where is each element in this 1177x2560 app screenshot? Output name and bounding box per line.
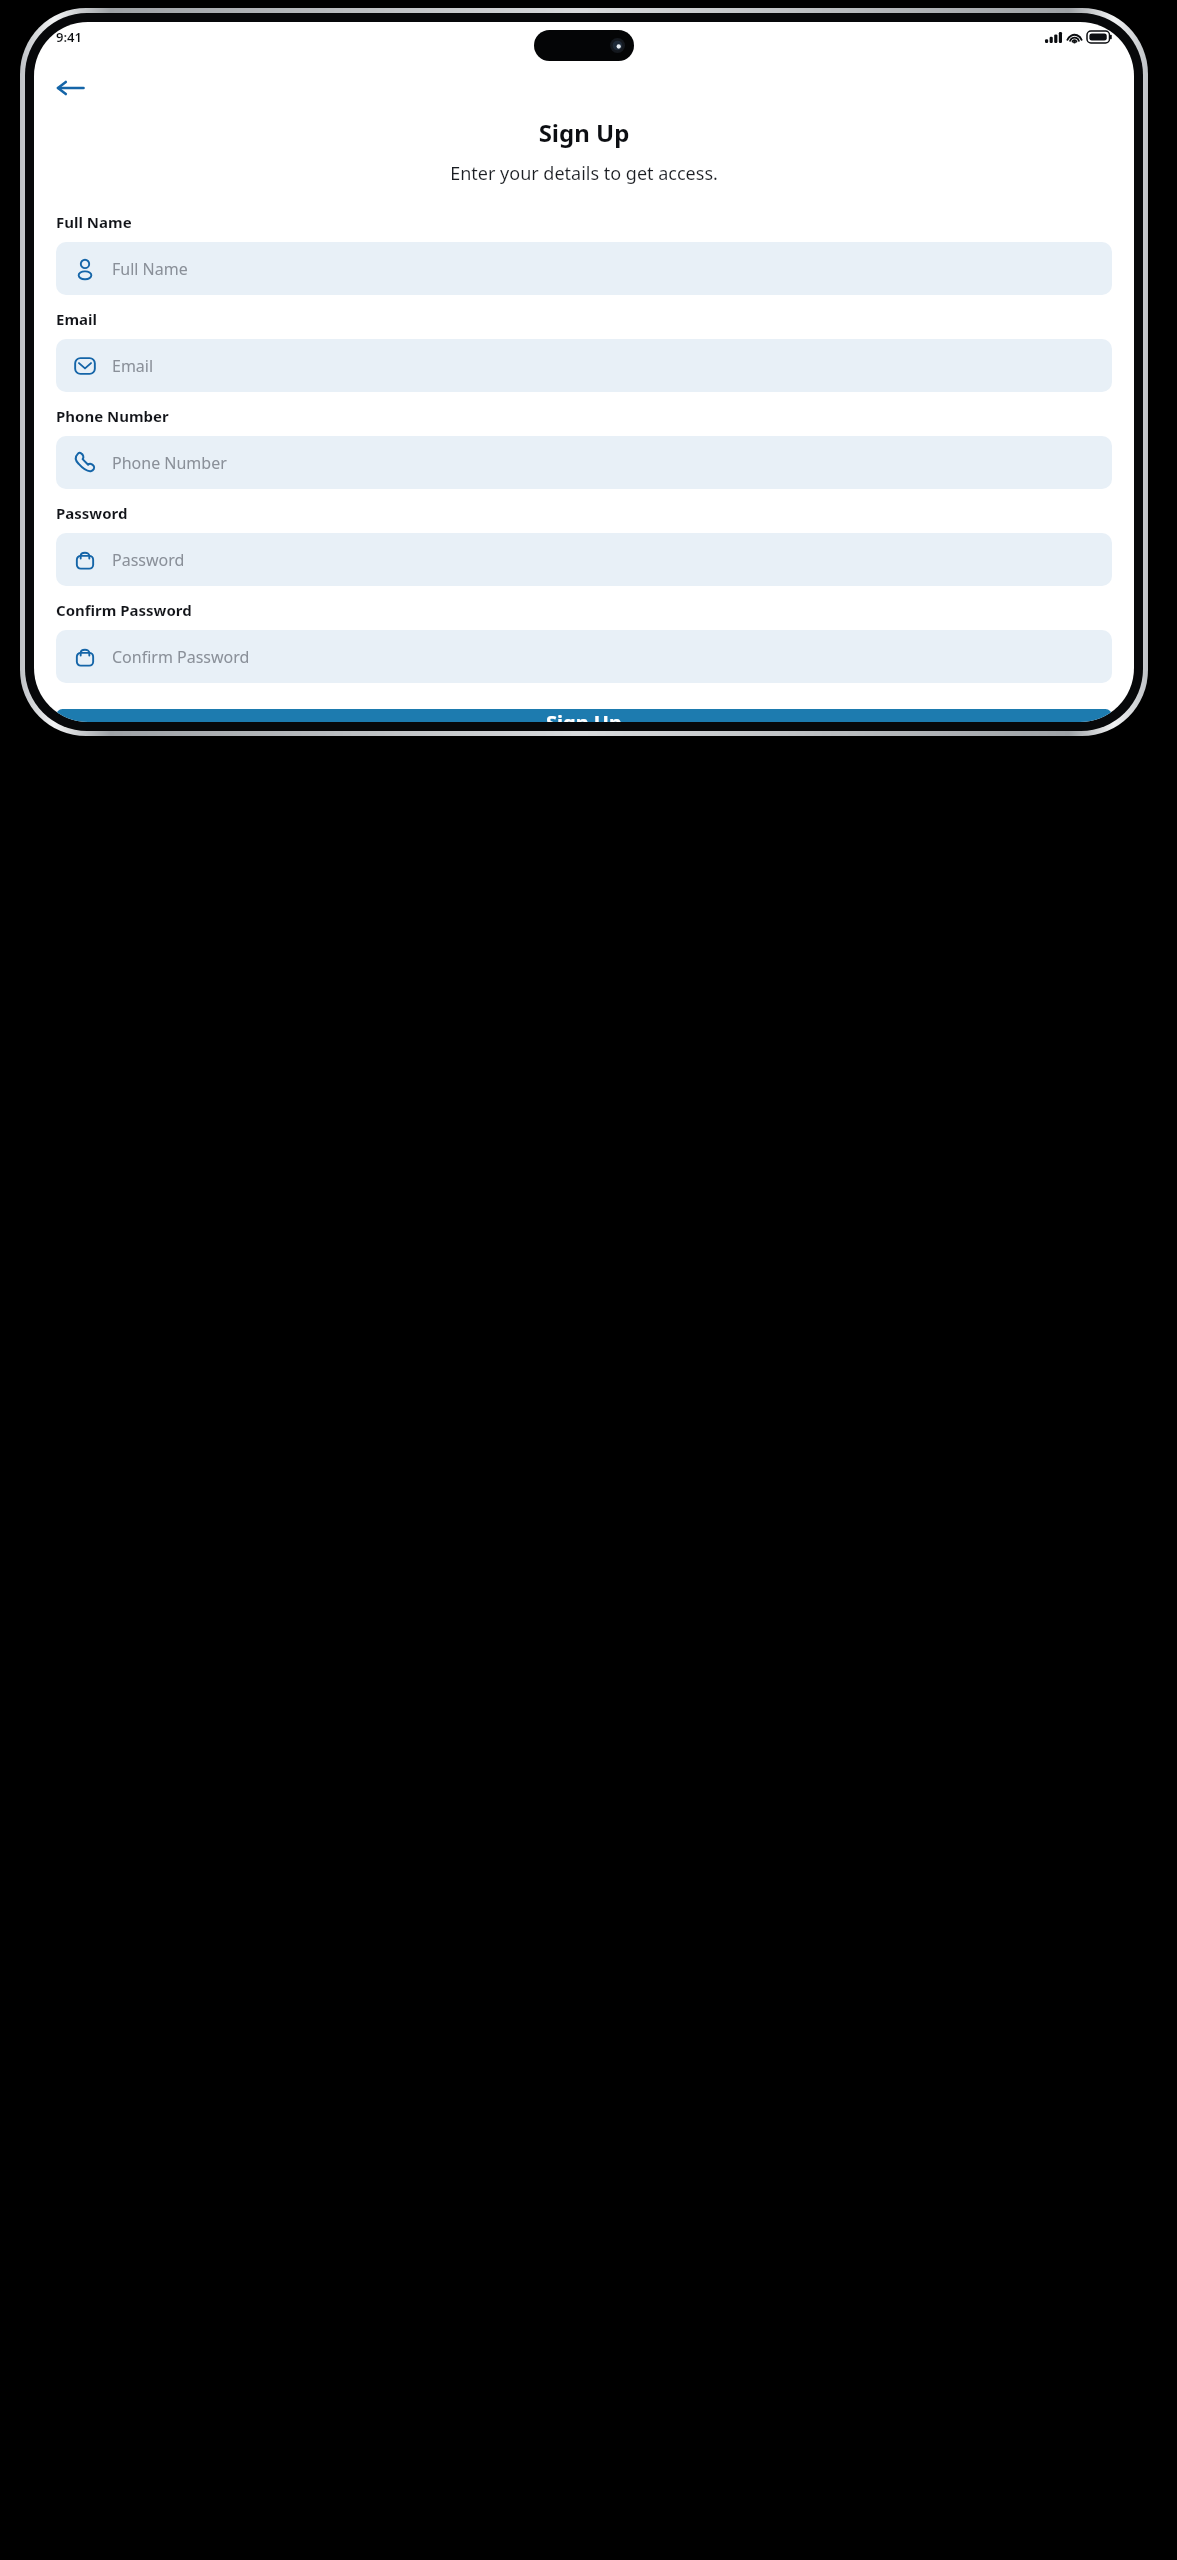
button[interactable]: Password — [56, 533, 1112, 586]
button[interactable]: Phone Number — [56, 436, 1112, 489]
staticText: Email — [112, 355, 154, 377]
staticText: Password — [56, 503, 128, 523]
staticText: Sign Up — [34, 116, 1134, 149]
staticText: Password — [112, 549, 185, 571]
staticText: Full Name — [56, 212, 132, 232]
staticText: Full Name — [112, 258, 188, 280]
staticText: Enter your details to get access. — [34, 161, 1134, 186]
button[interactable]: Back — [48, 66, 92, 110]
staticText: Confirm Password — [112, 646, 250, 668]
staticText: 9:41 — [56, 28, 82, 46]
staticText: Sign Up — [546, 709, 622, 722]
staticText: Email — [56, 309, 97, 329]
button[interactable]: Email — [56, 339, 1112, 392]
staticText: Phone Number — [112, 452, 227, 474]
button[interactable]: Sign Up — [56, 709, 1112, 722]
staticText: Confirm Password — [56, 600, 192, 620]
button[interactable]: Full Name — [56, 242, 1112, 295]
staticText: Phone Number — [56, 406, 169, 426]
button[interactable]: Confirm Password — [56, 630, 1112, 683]
